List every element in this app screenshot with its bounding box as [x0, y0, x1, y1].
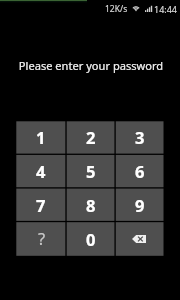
other: Backspace — [132, 235, 146, 243]
button[interactable]: 7 — [16, 189, 65, 221]
button[interactable]: 4 — [16, 155, 65, 187]
staticText: 12K/s — [105, 3, 128, 15]
staticText: 4 — [36, 160, 46, 182]
button[interactable]: 6 — [116, 155, 164, 187]
button[interactable]: 5 — [67, 155, 115, 187]
staticText: 6 — [135, 160, 145, 182]
staticText: ? — [38, 227, 46, 249]
staticText: 2 — [86, 126, 96, 148]
staticText: 5 — [86, 160, 96, 182]
button[interactable]: 8 — [67, 189, 115, 221]
staticText: 9 — [135, 194, 145, 216]
staticText: 3 — [135, 126, 145, 148]
staticText: Please enter your password — [1, 58, 180, 73]
button[interactable]: 3 — [116, 121, 164, 153]
staticText: 8 — [86, 194, 96, 216]
button[interactable]: 1 — [16, 121, 65, 153]
button[interactable]: 2 — [67, 121, 115, 153]
button[interactable]: Backspace — [116, 222, 164, 256]
staticText: 1 — [36, 126, 46, 148]
button[interactable]: ? — [16, 222, 65, 256]
staticText: 7 — [36, 194, 46, 216]
staticText: 0 — [86, 228, 96, 250]
button[interactable]: 9 — [116, 189, 164, 221]
button[interactable]: 0 — [67, 222, 115, 256]
staticText: 14:44 — [154, 3, 178, 15]
